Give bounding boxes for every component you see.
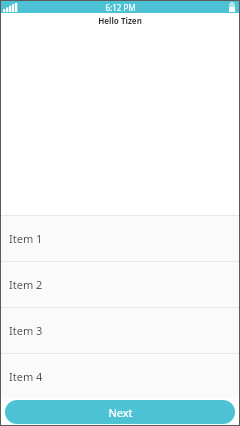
other: Battery [229, 2, 235, 12]
button[interactable]: Item 4 [1, 354, 239, 399]
button[interactable]: Item 3 [1, 308, 239, 353]
button[interactable]: Item 1 [1, 216, 239, 261]
staticText: Item 4 [9, 369, 43, 384]
button[interactable]: Item 2 [1, 262, 239, 307]
staticText: Next [108, 405, 133, 420]
staticText: 6:12 PM [105, 2, 136, 13]
staticText: Hello Tizen [98, 15, 142, 26]
button[interactable]: Next [5, 400, 235, 424]
other: Signal strength [3, 3, 15, 12]
staticText: Item 3 [9, 323, 43, 338]
staticText: Item 2 [9, 277, 43, 292]
staticText: Item 1 [9, 231, 43, 246]
